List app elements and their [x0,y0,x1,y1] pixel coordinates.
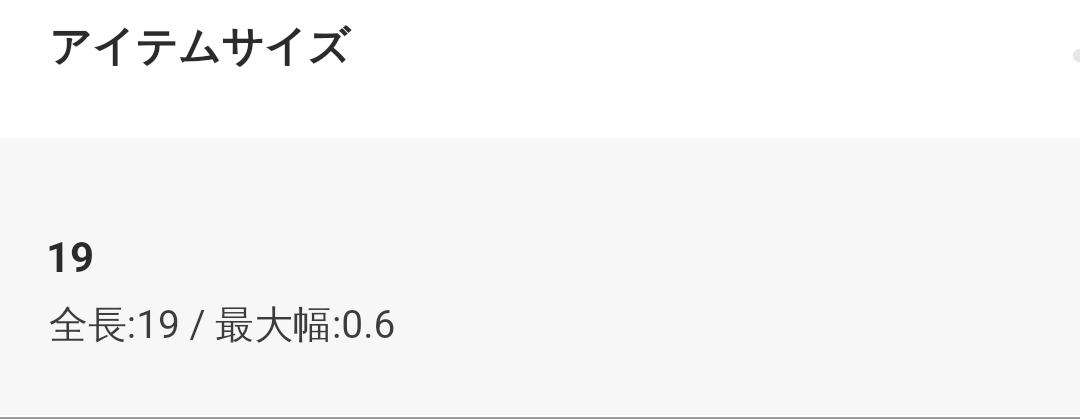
staticText: アイテムサイズ [49,21,350,74]
staticText: 19 [46,233,95,282]
button[interactable]: 19 [0,138,1080,415]
staticText: 全長:19 / 最大幅:0.6 [49,301,396,350]
button[interactable]: More options [1071,44,1080,70]
